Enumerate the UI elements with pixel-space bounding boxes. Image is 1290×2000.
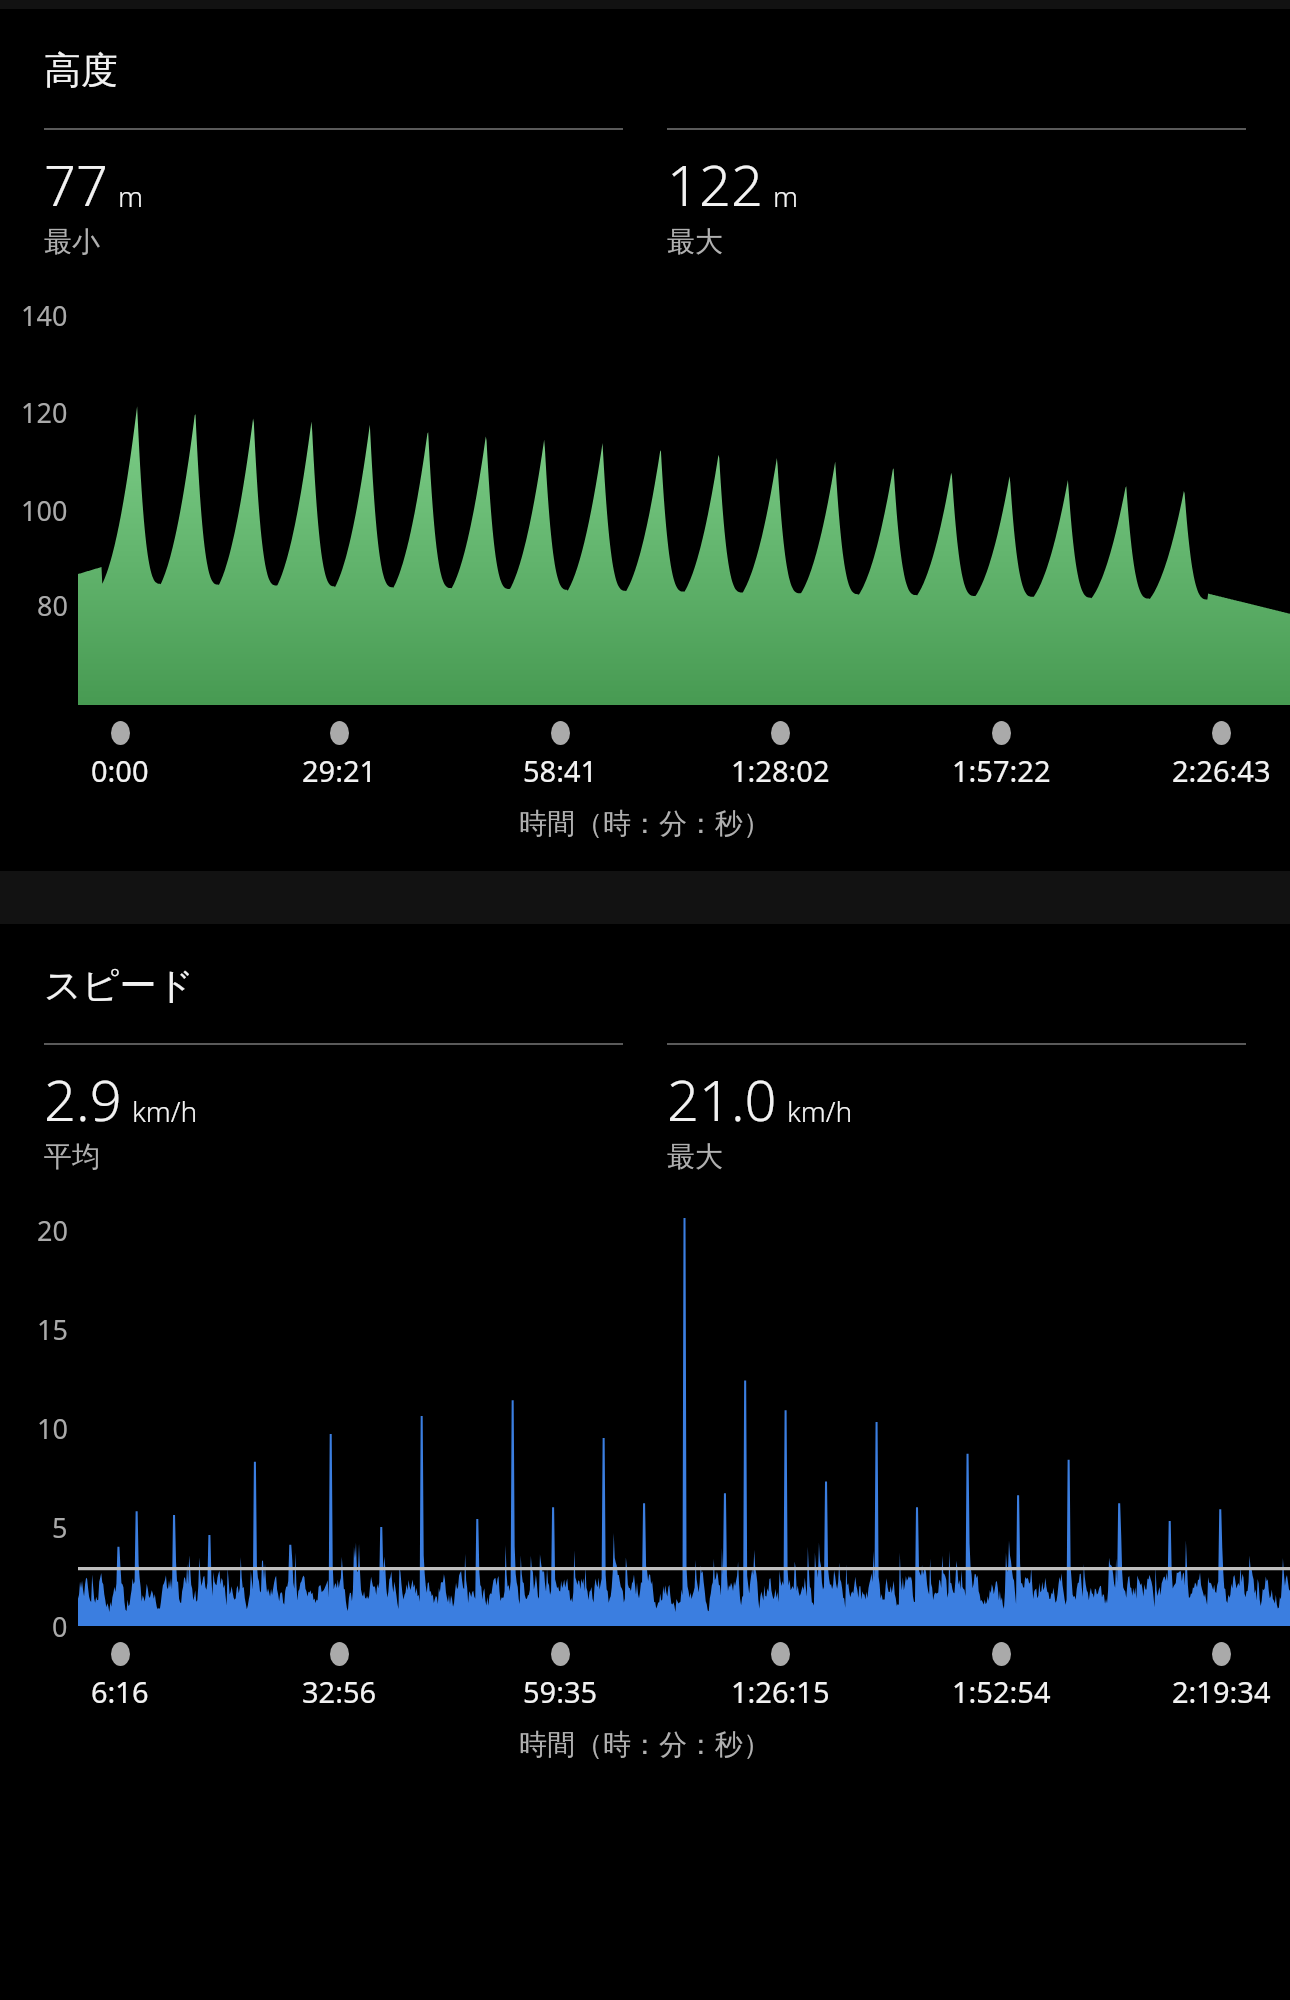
staticText: 0:00: [91, 751, 149, 790]
staticText: 最小: [44, 224, 100, 259]
button[interactable]: 21.0: [667, 1043, 1246, 1174]
staticText: 時間（時：分：秒）: [0, 1727, 1290, 1762]
staticText: 1:52:54: [952, 1672, 1051, 1711]
button[interactable]: スピード: [0, 924, 1290, 1792]
staticText: 2:19:34: [1172, 1672, 1271, 1711]
staticText: 2:26:43: [1172, 751, 1271, 790]
button[interactable]: 2.9: [44, 1043, 623, 1174]
staticText: 59:35: [523, 1672, 598, 1711]
button[interactable]: 1:57:22: [952, 721, 1051, 790]
staticText: 1:57:22: [952, 751, 1051, 790]
staticText: 120: [21, 394, 68, 431]
staticText: 5: [52, 1509, 68, 1546]
staticText: 高度: [44, 47, 118, 94]
button[interactable]: 2:19:34: [1172, 1642, 1271, 1711]
staticText: km/h: [132, 1092, 198, 1130]
button[interactable]: 6:16: [91, 1642, 149, 1711]
staticText: 80: [37, 587, 68, 624]
button[interactable]: 0:00: [91, 721, 149, 790]
staticText: 20: [37, 1212, 68, 1249]
button[interactable]: 1:52:54: [952, 1642, 1051, 1711]
staticText: 140: [21, 297, 68, 334]
staticText: 1:26:15: [731, 1672, 830, 1711]
staticText: m: [773, 177, 799, 215]
staticText: km/h: [787, 1092, 853, 1130]
staticText: 29:21: [302, 751, 377, 790]
staticText: 6:16: [91, 1672, 149, 1711]
staticText: 15: [37, 1311, 68, 1348]
staticText: m: [118, 177, 144, 215]
staticText: 21.0: [667, 1061, 777, 1137]
staticText: 最大: [667, 224, 723, 259]
button[interactable]: 58:41: [523, 721, 598, 790]
staticText: 最大: [667, 1139, 723, 1174]
button[interactable]: 77: [44, 128, 623, 259]
button[interactable]: 122: [667, 128, 1246, 259]
button[interactable]: 1:26:15: [731, 1642, 830, 1711]
button[interactable]: 29:21: [302, 721, 377, 790]
staticText: 58:41: [523, 751, 598, 790]
button[interactable]: 59:35: [523, 1642, 598, 1711]
staticText: 32:56: [302, 1672, 377, 1711]
staticText: 0: [52, 1608, 68, 1645]
staticText: 122: [667, 146, 763, 222]
staticText: 平均: [44, 1139, 100, 1174]
staticText: 77: [44, 146, 108, 222]
staticText: 1:28:02: [731, 751, 830, 790]
button[interactable]: 高度: [0, 9, 1290, 871]
staticText: スピード: [44, 962, 195, 1009]
button[interactable]: 1:28:02: [731, 721, 830, 790]
staticText: 時間（時：分：秒）: [0, 806, 1290, 841]
button[interactable]: 32:56: [302, 1642, 377, 1711]
staticText: 10: [37, 1410, 68, 1447]
staticText: 2.9: [44, 1061, 122, 1137]
staticText: 100: [21, 492, 68, 529]
button[interactable]: 2:26:43: [1172, 721, 1271, 790]
